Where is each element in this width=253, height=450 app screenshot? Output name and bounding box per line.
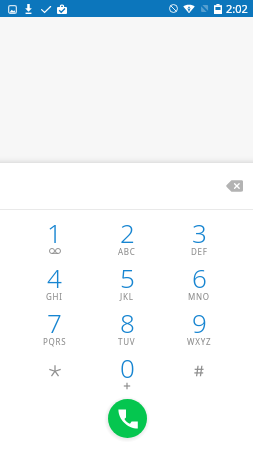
staticText: DEF	[191, 246, 208, 257]
staticText: 1	[47, 215, 62, 250]
button[interactable]: 6	[163, 260, 235, 305]
staticText: TUV	[118, 336, 136, 347]
staticText: 7	[47, 305, 62, 340]
staticText: 2	[120, 215, 135, 250]
button[interactable]: 8	[91, 305, 163, 350]
button[interactable]: 7	[18, 305, 91, 350]
staticText: 5	[120, 260, 135, 295]
button[interactable]: Backspace	[221, 176, 247, 196]
staticText: 0	[120, 350, 135, 385]
button[interactable]: 2	[91, 215, 163, 260]
button[interactable]: 0	[91, 350, 163, 395]
button[interactable]: 3	[163, 215, 235, 260]
button[interactable]: 1	[18, 215, 91, 260]
staticText: MNO	[188, 291, 210, 302]
staticText: JKL	[120, 291, 134, 302]
staticText: 3	[192, 215, 207, 250]
staticText: 4	[47, 260, 62, 295]
staticText: 2:02	[226, 1, 248, 16]
staticText: 6	[192, 260, 207, 295]
button[interactable]: 5	[91, 260, 163, 305]
staticText: ABC	[118, 246, 136, 257]
button[interactable]: Call	[108, 399, 147, 438]
button[interactable]: 4	[18, 260, 91, 305]
staticText: 8	[120, 305, 135, 340]
staticText: WXYZ	[187, 336, 212, 347]
staticText: PQRS	[43, 336, 67, 347]
button[interactable]	[18, 350, 91, 395]
staticText: 9	[192, 305, 207, 340]
button[interactable]: 9	[163, 305, 235, 350]
button[interactable]	[163, 350, 235, 395]
staticText: GHI	[46, 291, 63, 302]
